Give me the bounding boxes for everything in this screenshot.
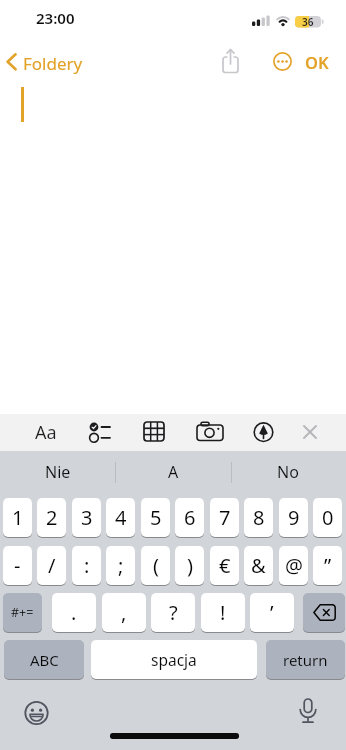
button[interactable]: ;: [106, 546, 135, 585]
staticText: No: [277, 461, 299, 483]
button[interactable]: [303, 593, 345, 632]
button[interactable]: ,: [102, 593, 146, 632]
staticText: A: [168, 461, 179, 483]
staticText: 6: [184, 504, 196, 531]
button[interactable]: [196, 421, 227, 444]
button[interactable]: /: [37, 546, 66, 585]
staticText: 9: [288, 504, 300, 531]
button[interactable]: 3: [72, 498, 101, 537]
button[interactable]: Nie: [8, 457, 108, 487]
staticText: !: [220, 599, 226, 626]
staticText: spacja: [151, 649, 197, 670]
staticText: #+=: [11, 604, 34, 621]
staticText: Aa: [35, 420, 57, 445]
staticText: (: [153, 552, 159, 579]
button[interactable]: spacja: [91, 640, 257, 679]
staticText: 7: [219, 504, 231, 531]
staticText: 4: [115, 504, 127, 531]
button[interactable]: [272, 51, 293, 72]
button[interactable]: return: [266, 640, 345, 679]
button[interactable]: [143, 421, 168, 444]
button[interactable]: 9: [279, 498, 308, 537]
button[interactable]: ): [175, 546, 204, 585]
button[interactable]: 6: [175, 498, 204, 537]
staticText: ABC: [30, 650, 59, 670]
staticText: 2: [46, 504, 58, 531]
staticText: ’: [270, 599, 274, 626]
staticText: -: [14, 552, 21, 579]
button[interactable]: :: [72, 546, 101, 585]
button[interactable]: [24, 701, 49, 726]
staticText: ”: [324, 552, 332, 579]
button[interactable]: A: [123, 457, 223, 487]
staticText: €: [219, 552, 231, 579]
button[interactable]: €: [210, 546, 239, 585]
button[interactable]: @: [279, 546, 308, 585]
button[interactable]: #+=: [3, 593, 42, 632]
staticText: 8: [253, 504, 265, 531]
staticText: OK: [305, 51, 329, 73]
staticText: 1: [12, 504, 24, 531]
staticText: 36: [302, 15, 314, 27]
button[interactable]: &: [244, 546, 273, 585]
button[interactable]: 2: [37, 498, 66, 537]
staticText: ): [187, 552, 193, 579]
staticText: Foldery: [23, 52, 83, 75]
staticText: 5: [150, 504, 162, 531]
staticText: ;: [118, 552, 124, 579]
button[interactable]: 1: [3, 498, 32, 537]
button[interactable]: (: [141, 546, 170, 585]
staticText: @: [285, 552, 303, 579]
staticText: Nie: [45, 461, 71, 483]
staticText: :: [84, 552, 90, 579]
button[interactable]: 7: [210, 498, 239, 537]
button[interactable]: [302, 424, 319, 441]
button[interactable]: ABC: [4, 640, 84, 679]
button[interactable]: ’: [250, 593, 294, 632]
button[interactable]: !: [201, 593, 245, 632]
button[interactable]: OK: [299, 50, 335, 74]
button[interactable]: [253, 422, 275, 443]
staticText: 0: [322, 504, 334, 531]
button[interactable]: Aa: [28, 417, 64, 447]
button[interactable]: [86, 420, 114, 445]
button[interactable]: [2, 48, 82, 74]
button[interactable]: 8: [244, 498, 273, 537]
button[interactable]: 5: [141, 498, 170, 537]
button[interactable]: 4: [106, 498, 135, 537]
button[interactable]: [297, 698, 319, 726]
staticText: 3: [81, 504, 93, 531]
button[interactable]: ?: [151, 593, 195, 632]
staticText: &: [251, 552, 266, 579]
button[interactable]: .: [52, 593, 96, 632]
button[interactable]: -: [3, 546, 32, 585]
staticText: 23:00: [36, 8, 75, 28]
staticText: .: [71, 599, 77, 626]
button[interactable]: 0: [313, 498, 342, 537]
staticText: /: [48, 552, 56, 579]
button[interactable]: [220, 48, 244, 75]
staticText: ,: [121, 599, 127, 626]
button[interactable]: ”: [313, 546, 342, 585]
button[interactable]: No: [238, 457, 338, 487]
staticText: ?: [169, 599, 178, 626]
staticText: return: [283, 650, 328, 670]
